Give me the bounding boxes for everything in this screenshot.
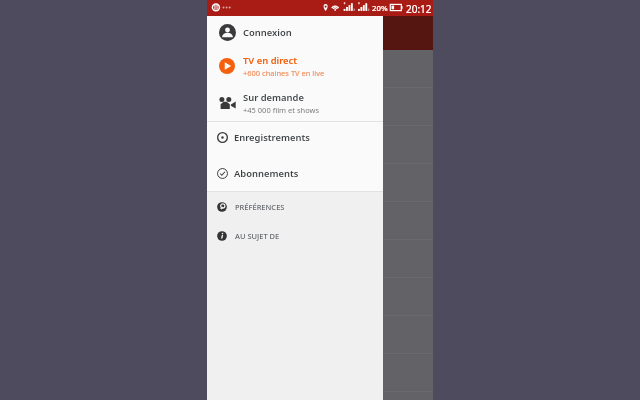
button[interactable]: Connexion <box>207 16 383 49</box>
staticText: +600 chaines TV en live <box>243 68 325 78</box>
staticText: Sur demande <box>243 91 304 104</box>
staticText: 20% <box>372 3 388 14</box>
button[interactable]: Close navigation drawer <box>383 16 433 400</box>
staticText: +45 000 film et shows <box>243 105 320 115</box>
button[interactable]: Abonnements <box>207 156 383 191</box>
button[interactable]: Sur demande <box>207 83 383 122</box>
staticText: Abonnements <box>234 167 299 180</box>
staticText: TV en direct <box>243 54 298 67</box>
button[interactable]: PRÉFÉRENCES <box>207 190 383 223</box>
button[interactable]: TV en direct <box>207 49 383 83</box>
button[interactable]: AU SUJET DE <box>207 219 383 252</box>
button[interactable]: Enregistrements <box>207 120 383 154</box>
staticText: PRÉFÉRENCES <box>235 202 285 212</box>
staticText: 20:12 <box>406 2 432 16</box>
staticText: Connexion <box>243 26 292 39</box>
staticText: Enregistrements <box>234 131 310 144</box>
staticText: AU SUJET DE <box>235 231 280 241</box>
